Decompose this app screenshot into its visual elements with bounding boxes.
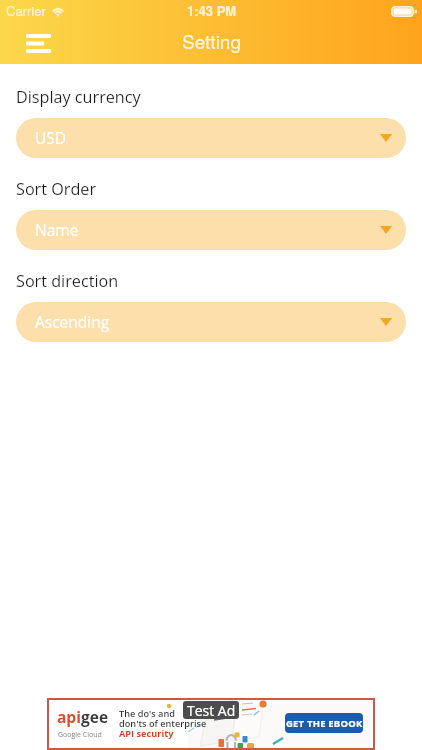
button[interactable]: Advertisement <box>48 699 374 749</box>
staticText: Name <box>35 219 79 240</box>
staticText: GET THE EBOOK <box>286 717 363 730</box>
staticText: don'ts of enterprise <box>119 717 207 730</box>
staticText: Setting <box>182 27 241 54</box>
staticText: Google Cloud <box>58 730 102 740</box>
button[interactable]: Open navigation menu <box>12 20 64 64</box>
staticText: USD <box>35 127 67 148</box>
staticText: api <box>57 706 81 727</box>
staticText: Test Ad <box>187 701 236 719</box>
button[interactable]: USD <box>16 118 406 158</box>
button[interactable]: Name <box>16 210 406 250</box>
staticText: Sort Order <box>16 178 97 200</box>
staticText: Ascending <box>35 311 110 332</box>
staticText: Display currency <box>16 86 141 108</box>
button[interactable]: GET THE EBOOK <box>285 713 363 733</box>
staticText: Sort direction <box>16 270 119 292</box>
button[interactable]: Ascending <box>16 302 406 342</box>
staticText: 1:43 PM <box>187 1 237 20</box>
staticText: The do's and <box>119 707 176 720</box>
staticText: Carrier <box>6 1 46 20</box>
staticText: gee <box>81 706 109 727</box>
staticText: API security <box>119 727 174 740</box>
